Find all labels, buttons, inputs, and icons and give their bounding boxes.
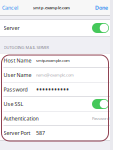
staticText: Server Port (3, 129, 30, 137)
staticText: Password (3, 86, 27, 93)
staticText: Server (3, 24, 19, 32)
staticText: Cancel (2, 4, 18, 11)
staticText: smtp.example.com (36, 58, 70, 63)
staticText: OUTGOING MAIL SERVER (3, 45, 48, 50)
button[interactable]: Use SSL (0, 97, 113, 111)
staticText: smtp.example.com (33, 5, 70, 10)
button[interactable]: Cancel (0, 0, 20, 15)
staticText: Password (92, 116, 109, 121)
button[interactable]: Done (93, 0, 113, 15)
staticText: ••••••••••• (36, 84, 69, 95)
button[interactable]: Server (0, 20, 113, 36)
staticText: Authentication (3, 115, 38, 122)
staticText: 587 (36, 129, 45, 137)
staticText: Done (95, 4, 108, 11)
staticText: Host Name (3, 57, 31, 64)
button[interactable]: Authentication (0, 111, 113, 125)
staticText: Use SSL (3, 100, 23, 108)
staticText: User Name (3, 71, 31, 79)
staticText: name@example.com (36, 72, 74, 78)
